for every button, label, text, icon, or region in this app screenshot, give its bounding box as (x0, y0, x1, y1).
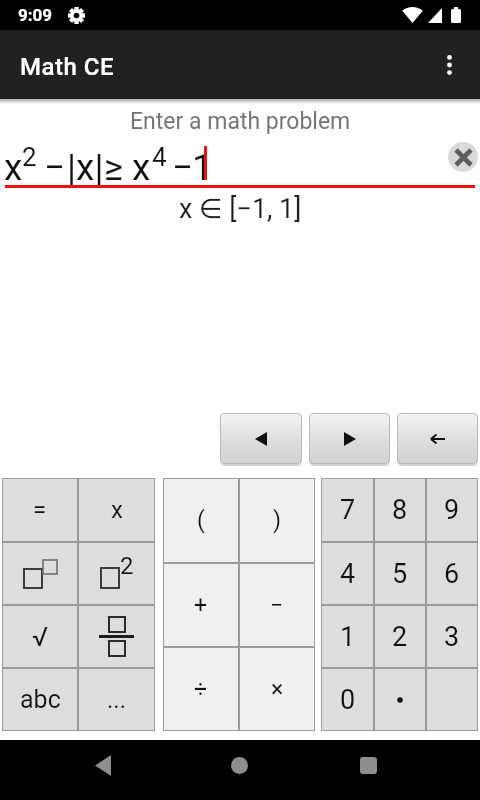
staticText: 6 (444, 558, 460, 590)
staticText: √ (32, 621, 49, 653)
button[interactable]: 0 (321, 668, 374, 731)
staticText: 7 (340, 494, 356, 526)
staticText: ≥ (104, 146, 124, 189)
staticText: 2 (22, 142, 37, 172)
button[interactable] (448, 142, 478, 172)
button[interactable]: + (163, 563, 239, 647)
button[interactable]: 2 (374, 605, 426, 668)
staticText: x (132, 146, 151, 189)
staticText: − (270, 592, 284, 619)
button[interactable]: − (239, 563, 315, 647)
button[interactable]: 7 (321, 478, 374, 542)
button[interactable] (78, 605, 155, 668)
button[interactable]: 1 (321, 605, 374, 668)
staticText: = (33, 496, 47, 524)
button[interactable]: ÷ (163, 647, 239, 731)
button[interactable]: 9 (426, 478, 478, 542)
staticText: 2 (120, 552, 134, 580)
staticText: 0 (340, 684, 356, 716)
button[interactable] (426, 668, 478, 731)
staticText: ÷ (194, 676, 208, 703)
staticText: − (44, 146, 66, 189)
staticText: − (172, 146, 194, 189)
button[interactable]: ( (163, 478, 239, 563)
button[interactable] (220, 413, 302, 464)
staticText: 1 (340, 621, 356, 653)
button[interactable]: 4 (321, 542, 374, 605)
button[interactable]: ... (78, 668, 155, 731)
staticText: x ∈ [−1, 1] (179, 193, 302, 225)
button[interactable]: abc (2, 668, 78, 731)
staticText: 3 (444, 621, 460, 653)
staticText: 9 (444, 494, 460, 526)
button[interactable] (374, 668, 426, 731)
button[interactable] (309, 413, 390, 464)
button[interactable]: = (2, 478, 78, 542)
staticText: ... (107, 686, 126, 714)
staticText: ) (273, 507, 282, 534)
button[interactable]: 6 (426, 542, 478, 605)
button[interactable]: 8 (374, 478, 426, 542)
staticText: 4 (340, 558, 356, 590)
staticText: 4 (152, 142, 167, 172)
staticText: 8 (392, 494, 408, 526)
button[interactable]: x (78, 478, 155, 542)
button[interactable]: 2 (78, 542, 155, 605)
staticText: abc (20, 685, 61, 714)
staticText: + (194, 592, 208, 619)
staticText: 1 (192, 146, 213, 189)
button[interactable]: 3 (426, 605, 478, 668)
button[interactable] (436, 52, 462, 78)
staticText: Enter a math problem (130, 108, 351, 135)
button[interactable] (221, 747, 257, 783)
staticText: × (271, 676, 284, 703)
button[interactable] (350, 747, 386, 783)
button[interactable] (2, 542, 78, 605)
staticText: 5 (392, 558, 408, 590)
staticText: x (111, 496, 123, 524)
staticText: 9:09 (18, 5, 53, 25)
button[interactable]: ) (239, 478, 315, 563)
staticText: x (4, 146, 23, 189)
staticText: 2 (392, 621, 408, 653)
button[interactable]: √ (2, 605, 78, 668)
button[interactable] (85, 747, 121, 783)
staticText: Math CE (20, 53, 115, 81)
staticText: |x| (67, 146, 104, 189)
button[interactable]: 5 (374, 542, 426, 605)
staticText: ( (197, 507, 205, 534)
button[interactable]: × (239, 647, 315, 731)
button[interactable] (397, 413, 478, 464)
